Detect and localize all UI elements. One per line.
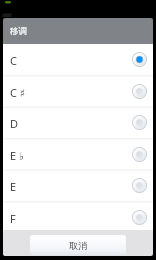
button[interactable]: C bbox=[3, 44, 153, 76]
staticText: E bbox=[10, 179, 17, 194]
button[interactable]: C ♯ bbox=[3, 76, 153, 108]
button[interactable]: F bbox=[3, 202, 153, 234]
staticText: C bbox=[10, 53, 17, 68]
button[interactable]: E bbox=[3, 170, 153, 202]
staticText: 移调 bbox=[10, 26, 27, 37]
button[interactable]: E ♭ bbox=[3, 139, 153, 171]
staticText: D bbox=[10, 116, 19, 131]
staticText: 取消 bbox=[69, 240, 87, 251]
staticText: E ♭ bbox=[10, 148, 25, 163]
button[interactable]: 取消 bbox=[30, 235, 126, 255]
button[interactable]: D bbox=[3, 107, 153, 139]
staticText: C ♯ bbox=[10, 85, 26, 100]
staticText: F bbox=[10, 211, 16, 226]
